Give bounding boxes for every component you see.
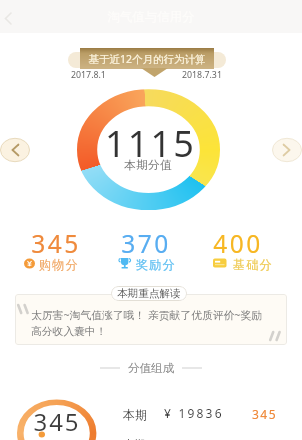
staticText: 本期重点解读 <box>117 287 181 300</box>
staticText: 1115 <box>105 119 196 159</box>
staticText: 购物分 <box>39 257 79 272</box>
staticText: 奖励分 <box>136 257 176 272</box>
button[interactable] <box>15 294 287 345</box>
staticText: ¥ 19836 <box>164 405 224 421</box>
button[interactable] <box>0 136 32 164</box>
staticText: 基础分 <box>233 257 273 272</box>
staticText: 370 <box>121 227 171 260</box>
staticText: 345 <box>31 227 81 260</box>
button[interactable]: 370 <box>36 223 256 263</box>
button[interactable]: 本期重点解读 <box>111 286 187 301</box>
button[interactable]: 400 <box>128 223 302 263</box>
staticText: 345 <box>252 406 278 422</box>
staticText: 2018.7.31 <box>182 69 222 81</box>
staticText: 345 <box>33 405 81 438</box>
staticText: 分值组成 <box>128 361 174 375</box>
staticText: 上期 <box>123 437 145 440</box>
staticText: 基于近12个月的行为计算 <box>88 52 206 66</box>
staticText: 400 <box>213 227 263 260</box>
button[interactable] <box>270 136 302 164</box>
staticText: 太厉害~淘气值涨了哦！ 亲贡献了优质评价~奖励 高分收入囊中！ <box>31 307 263 338</box>
button[interactable] <box>0 0 20 33</box>
staticText: 2017.8.1 <box>71 69 106 81</box>
button[interactable]: 345 <box>0 223 166 263</box>
staticText: 本期 <box>123 407 147 422</box>
button[interactable] <box>112 399 295 429</box>
staticText: 本期分值 <box>124 158 172 173</box>
